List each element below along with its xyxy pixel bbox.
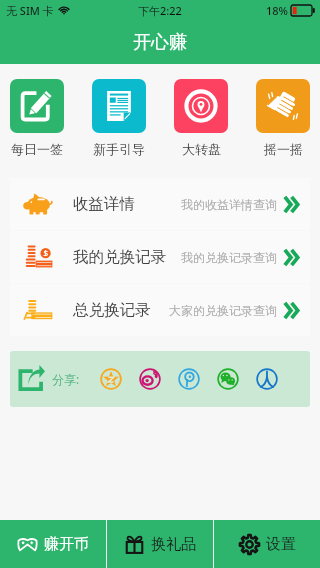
button[interactable]: 每日一签 xyxy=(10,79,64,157)
staticText: 每日一签 xyxy=(11,141,63,157)
button[interactable]: 大转盘 xyxy=(174,79,228,157)
staticText: 开心赚 xyxy=(133,31,187,54)
staticText: 收益详情 xyxy=(73,194,135,214)
button[interactable]: QQ空间 xyxy=(169,362,208,396)
staticText: 无 SIM 卡 xyxy=(6,3,54,18)
button[interactable]: 分享 xyxy=(15,363,47,395)
staticText: 换礼品 xyxy=(151,535,196,554)
staticText: 我的收益详情查询 xyxy=(181,197,277,212)
button[interactable]: 赚开币 xyxy=(0,520,106,568)
button[interactable]: 总兑换记录 xyxy=(10,284,310,336)
staticText: 赚开币 xyxy=(44,535,89,554)
button[interactable]: 支付宝 xyxy=(247,362,286,396)
button[interactable]: 微信 xyxy=(208,362,247,396)
staticText: 大转盘 xyxy=(182,141,221,157)
button[interactable]: 我的兑换记录 xyxy=(10,231,310,283)
button[interactable]: 摇一摇 xyxy=(256,79,310,157)
staticText: 总兑换记录 xyxy=(73,300,151,320)
button[interactable]: 换礼品 xyxy=(107,520,213,568)
button[interactable]: 收益详情 xyxy=(10,178,310,230)
staticText: 设置 xyxy=(266,535,296,554)
staticText: 我的兑换记录 xyxy=(73,247,166,267)
staticText: 分享: xyxy=(52,371,80,387)
staticText: 新手引导 xyxy=(93,141,145,157)
staticText: 我的兑换记录查询 xyxy=(181,250,277,265)
button[interactable]: 新手引导 xyxy=(92,79,146,157)
staticText: 摇一摇 xyxy=(264,141,303,157)
staticText: 下午2:22 xyxy=(138,3,182,18)
button[interactable]: 新浪微博热点 xyxy=(91,362,130,396)
button[interactable]: 设置 xyxy=(214,520,320,568)
button[interactable]: 微博 xyxy=(130,362,169,396)
staticText: 大家的兑换记录查询 xyxy=(169,303,277,318)
staticText: 18% xyxy=(266,3,288,18)
